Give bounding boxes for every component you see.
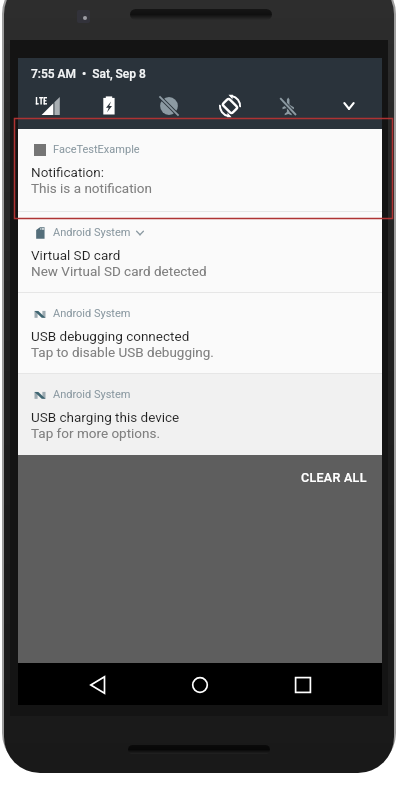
staticText: New Virtual SD card detected xyxy=(31,263,207,279)
staticText: Android System xyxy=(53,388,131,401)
staticText: USB charging this device xyxy=(31,409,180,425)
button[interactable]: CLEAR ALL xyxy=(292,462,376,493)
staticText: Virtual SD card xyxy=(31,247,121,263)
button[interactable]: Android System xyxy=(18,212,382,292)
staticText: 7:55 AM • Sat, Sep 8 xyxy=(31,67,146,81)
button[interactable]: Battery charging xyxy=(87,85,131,127)
staticText: FaceTestExample xyxy=(53,143,140,156)
staticText: Notification: xyxy=(31,164,105,180)
button[interactable]: Android System xyxy=(18,293,382,373)
button[interactable]: Back xyxy=(77,664,118,705)
staticText: USB debugging connected xyxy=(31,328,190,344)
button[interactable]: Auto rotate xyxy=(208,85,252,127)
button[interactable]: Airplane mode off xyxy=(265,85,309,127)
button[interactable]: Do not disturb off xyxy=(147,85,191,127)
button[interactable]: Expand quick settings xyxy=(327,85,371,127)
button[interactable]: Android System xyxy=(18,374,382,455)
button[interactable]: Mobile signal LTE xyxy=(26,85,70,127)
staticText: CLEAR ALL xyxy=(301,470,367,485)
staticText: Android System xyxy=(53,307,131,320)
staticText: Tap for more options. xyxy=(31,425,161,441)
staticText: This is a notification xyxy=(31,180,152,196)
button[interactable]: Home xyxy=(179,664,220,705)
staticText: Android System xyxy=(53,226,131,239)
button[interactable]: FaceTestExample xyxy=(18,129,382,211)
button[interactable]: Recent apps xyxy=(282,664,323,705)
staticText: Tap to disable USB debugging. xyxy=(31,344,214,360)
